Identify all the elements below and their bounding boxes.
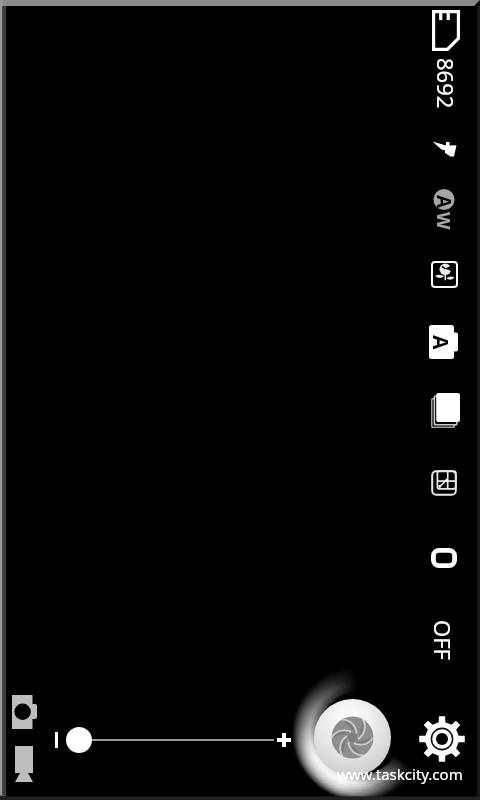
button[interactable]: Shutter <box>314 699 391 776</box>
button[interactable]: Exposure <box>429 325 458 359</box>
staticText: www.taskcity.com <box>337 764 463 784</box>
button[interactable]: Burst <box>431 393 460 428</box>
button[interactable]: Image size <box>431 470 457 496</box>
button[interactable]: Aspect <box>431 548 457 568</box>
button[interactable]: Flash <box>428 134 460 162</box>
button[interactable]: Storage <box>432 10 460 51</box>
staticText: A <box>429 335 455 350</box>
button[interactable]: Scene mode <box>430 260 459 289</box>
button[interactable]: OFF <box>430 609 458 671</box>
button[interactable]: Photo mode <box>12 695 38 729</box>
button[interactable]: Settings <box>418 715 466 763</box>
button[interactable]: White balance <box>428 188 460 230</box>
staticText: W <box>431 212 456 230</box>
staticText: OFF <box>430 620 458 661</box>
staticText: 8692 <box>433 58 461 109</box>
button[interactable]: Video mode <box>15 746 33 784</box>
staticText: A <box>431 195 457 209</box>
